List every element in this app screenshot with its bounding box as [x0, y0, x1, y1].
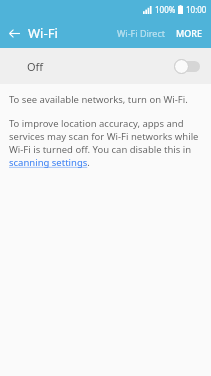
button[interactable]: Back [0, 19, 28, 47]
staticText: MORE [176, 27, 203, 39]
button[interactable]: Wi-Fi toggle, off [174, 58, 200, 74]
staticText: 100% [155, 4, 176, 15]
button[interactable]: Wi-Fi Direct [112, 21, 170, 45]
staticText: Wi-Fi [28, 24, 58, 42]
staticText: 10:00 [186, 4, 207, 15]
staticText: Wi-Fi Direct [117, 27, 165, 39]
staticText: To see available networks, turn on Wi-Fi… [9, 93, 188, 106]
button[interactable]: Off [0, 48, 211, 84]
staticText: Off [27, 59, 44, 74]
staticText: To improve location accuracy, apps and s… [9, 117, 202, 169]
button[interactable]: MORE [172, 21, 211, 45]
